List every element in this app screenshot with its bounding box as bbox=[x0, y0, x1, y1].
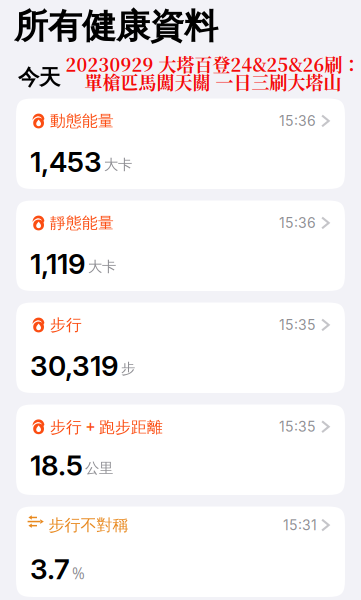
staticText: 步行 bbox=[50, 315, 82, 335]
staticText: 15:36 bbox=[279, 112, 316, 129]
staticText: 15:35 bbox=[279, 316, 316, 333]
staticText: 1,453 bbox=[30, 145, 102, 179]
staticText: 30,319 bbox=[30, 349, 119, 383]
staticText: 步 bbox=[121, 360, 135, 378]
staticText: 動態能量 bbox=[50, 111, 114, 131]
button[interactable]: 步行不對稱 bbox=[16, 506, 345, 597]
staticText: 15:35 bbox=[279, 418, 316, 435]
button[interactable]: 步行 + 跑步距離 bbox=[16, 404, 345, 495]
staticText: 單槍匹馬闖天關 一日三刷大塔山 bbox=[84, 69, 341, 95]
staticText: 步行不對稱 bbox=[48, 515, 128, 535]
staticText: 今天 bbox=[18, 64, 60, 91]
staticText: 大卡 bbox=[88, 258, 116, 276]
staticText: 公里 bbox=[85, 459, 113, 477]
staticText: 步行 + 跑步距離 bbox=[50, 416, 163, 437]
staticText: 靜態能量 bbox=[50, 213, 114, 233]
staticText: 18.5 bbox=[30, 448, 83, 482]
staticText: 20230929 大塔百登24&25&26刷： bbox=[65, 51, 360, 77]
staticText: 大卡 bbox=[104, 156, 132, 174]
staticText: 所有健康資料 bbox=[14, 5, 218, 48]
button[interactable]: 動態能量 bbox=[16, 98, 345, 189]
staticText: 15:31 bbox=[283, 517, 317, 533]
staticText: % bbox=[72, 563, 85, 584]
button[interactable]: 步行 bbox=[16, 302, 345, 393]
staticText: 15:36 bbox=[279, 214, 316, 231]
button[interactable]: 靜態能量 bbox=[16, 200, 345, 291]
staticText: 1,119 bbox=[30, 247, 86, 281]
staticText: 3.7 bbox=[30, 552, 70, 586]
